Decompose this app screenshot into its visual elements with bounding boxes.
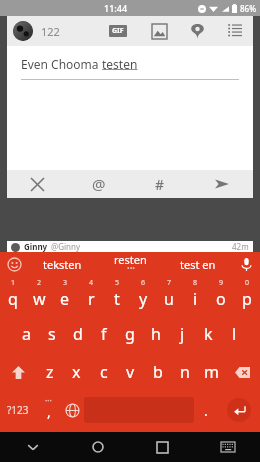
button[interactable]: ?123 (0, 391, 36, 429)
button[interactable]: g (117, 315, 143, 353)
staticText: @ (92, 174, 106, 194)
staticText: m (204, 361, 219, 383)
staticText: p (242, 288, 252, 310)
staticText: s (48, 323, 56, 345)
button[interactable]: . (194, 391, 218, 429)
button[interactable]: z (36, 353, 63, 391)
staticText: q (8, 288, 18, 310)
staticText: . (204, 401, 208, 420)
button[interactable]: k (195, 315, 221, 353)
button[interactable]: v (117, 353, 144, 391)
button[interactable]: resten (96, 252, 164, 276)
button[interactable]: j (169, 315, 195, 353)
staticText: d (73, 323, 83, 345)
button[interactable]: Home (65, 432, 130, 462)
staticText: t (114, 288, 120, 310)
staticText: 42m (232, 241, 249, 252)
button[interactable]: Hashtag (129, 170, 191, 198)
button[interactable]: 0 (234, 276, 260, 315)
button[interactable]: Recent apps (130, 432, 195, 462)
button[interactable]: l (221, 315, 247, 353)
staticText: a (22, 323, 31, 345)
button[interactable]: 2 (26, 276, 52, 315)
staticText: o (216, 288, 226, 310)
button[interactable]: 3 (52, 276, 78, 315)
staticText: teksten (43, 257, 82, 272)
button[interactable]: Voice input (232, 252, 260, 276)
staticText: g (125, 323, 135, 345)
button[interactable]: Location (185, 19, 209, 43)
button[interactable]: 7 (156, 276, 182, 315)
staticText: ?123 (7, 403, 29, 417)
button[interactable]: Close (7, 170, 68, 198)
button[interactable]: test en (164, 252, 232, 276)
button[interactable]: Enter (218, 391, 260, 429)
button[interactable]: Add photo (147, 19, 171, 43)
button[interactable]: Switch keyboard (195, 432, 260, 462)
button[interactable]: x (63, 353, 90, 391)
button[interactable]: Backspace (225, 353, 260, 391)
staticText: n (180, 361, 190, 383)
staticText: z (46, 361, 54, 383)
staticText: y (139, 288, 148, 310)
staticText: f (101, 323, 107, 345)
button[interactable]: Mention (68, 170, 129, 198)
button[interactable]: c (90, 353, 117, 391)
staticText: 8 (193, 278, 198, 288)
button[interactable]: n (171, 353, 198, 391)
button[interactable]: Change language (60, 391, 84, 429)
button[interactable]: Send (191, 170, 253, 198)
button[interactable]: teksten (28, 252, 96, 276)
staticText: testen (102, 56, 138, 72)
button[interactable]: f (91, 315, 117, 353)
button[interactable]: Hide keyboard (0, 432, 65, 462)
staticText: 11:44 (104, 2, 128, 14)
staticText: @Ginny (51, 241, 81, 252)
staticText: 9 (219, 278, 224, 288)
button[interactable]: Poll (223, 19, 247, 43)
staticText: GIF (112, 26, 124, 36)
staticText: Ginny (24, 241, 48, 252)
staticText: test en (180, 257, 216, 272)
button[interactable]: 9 (208, 276, 234, 315)
staticText: w (33, 288, 46, 310)
button[interactable]: h (143, 315, 169, 353)
staticText: 6 (141, 278, 146, 288)
staticText: h (151, 323, 161, 345)
staticText: l (232, 323, 237, 345)
button[interactable]: Profile (13, 21, 33, 41)
button[interactable]: Emoji (0, 252, 28, 276)
button[interactable]: b (144, 353, 171, 391)
staticText: r (88, 288, 95, 310)
button[interactable]: Shift (0, 353, 36, 391)
button[interactable]: 4 (78, 276, 104, 315)
staticText: 4 (89, 278, 94, 288)
button[interactable]: Ginny (11, 241, 249, 252)
button[interactable]: a (13, 315, 39, 353)
staticText: 122 (41, 24, 60, 39)
staticText: 0 (245, 278, 250, 288)
button[interactable]: s (39, 315, 65, 353)
staticText: c (100, 361, 108, 383)
button[interactable]: d (65, 315, 91, 353)
button[interactable]: 1 (0, 276, 26, 315)
staticText: u (164, 288, 174, 310)
button[interactable]: GIF (105, 21, 131, 41)
staticText: ••• (127, 264, 135, 273)
staticText: j (180, 323, 185, 345)
button[interactable]: 8 (182, 276, 208, 315)
staticText: 3 (63, 278, 68, 288)
button[interactable]: ••• (36, 391, 60, 429)
button[interactable]: m (198, 353, 225, 391)
staticText: k (204, 323, 213, 345)
staticText: 1 (11, 278, 16, 288)
staticText: v (126, 361, 135, 383)
button[interactable]: 5 (104, 276, 130, 315)
staticText: 7 (167, 278, 172, 288)
staticText: 5 (115, 278, 120, 288)
button[interactable]: 6 (130, 276, 156, 315)
staticText: b (153, 361, 163, 383)
staticText: 2 (37, 278, 42, 288)
staticText: ••• (45, 397, 52, 405)
